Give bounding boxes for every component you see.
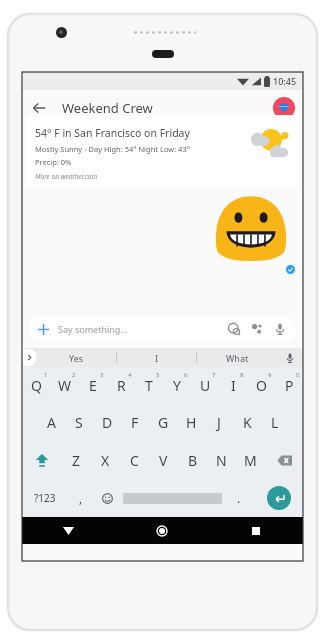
staticText: , [79,490,83,506]
button[interactable]: O [247,367,275,404]
staticText: J [217,413,221,432]
button[interactable]: Shift [22,441,61,479]
staticText: Z [72,451,81,470]
button[interactable]: Profile [273,97,295,119]
staticText: 6 [184,371,188,379]
button[interactable]: Assistant [248,320,266,338]
button[interactable]: Expand suggestions [23,349,36,366]
staticText: O [256,376,267,395]
button[interactable]: V [149,441,178,479]
button[interactable]: Voice input [271,320,289,338]
button[interactable]: U [191,367,219,404]
other: Add [38,324,49,335]
staticText: What [226,352,249,364]
button[interactable]: Backspace [265,441,303,479]
staticText: W [58,376,72,395]
staticText: Mostly Sunny - Day High: 54° Night Low: … [35,144,190,154]
staticText: 5 [156,371,160,379]
button[interactable]: W [51,367,79,404]
staticText: I [231,376,236,395]
button[interactable]: J [205,404,233,441]
button[interactable]: L [261,404,289,441]
staticText: 9 [268,371,272,379]
button[interactable]: , [67,479,94,517]
staticText: V [159,451,168,470]
button[interactable]: S [65,404,93,441]
staticText: 54° F in San Francisco on Friday [35,126,190,140]
button[interactable]: Stickers [225,320,243,338]
button[interactable]: E [79,367,107,404]
staticText: Q [31,376,42,395]
staticText: 4 [128,371,132,379]
staticText: H [186,413,197,432]
button[interactable]: ?123 [22,479,67,517]
staticText: F [131,413,139,432]
staticText: P [285,376,294,395]
button[interactable]: Voice typing [277,348,303,367]
button[interactable]: Back [22,517,115,544]
button[interactable]: A [37,404,65,441]
staticText: 10:45 [273,75,297,87]
button[interactable]: Recents [209,517,303,544]
button[interactable]: T [135,367,163,404]
button[interactable]: Z [61,441,91,479]
staticText: 1 [44,371,48,379]
staticText: B [188,451,198,470]
staticText: T [145,376,153,395]
staticText: 0 [296,371,300,379]
staticText: Y [173,376,181,395]
staticText: . [237,490,241,506]
button[interactable]: R [107,367,135,404]
staticText: U [200,376,211,395]
staticText: S [75,413,83,432]
staticText: More on weather.com [35,172,98,181]
staticText: I [155,352,159,364]
button[interactable]: Emoji [94,479,121,517]
staticText: 3 [100,371,104,379]
staticText: X [101,451,110,470]
button[interactable]: 54° F in San Francisco on Friday [26,115,299,187]
staticText: G [158,413,169,432]
staticText: Precip: 0% [35,157,72,167]
button[interactable]: C [120,441,149,479]
button[interactable]: H [177,404,205,441]
staticText: K [243,413,252,432]
button[interactable]: Y [163,367,191,404]
staticText: C [130,451,139,470]
button[interactable]: Back [22,91,56,125]
staticText: M [244,451,257,470]
button[interactable]: D [93,404,121,441]
button[interactable]: What [197,348,277,367]
button[interactable]: . [224,479,254,517]
button[interactable]: I [117,348,197,367]
button[interactable]: I [219,367,247,404]
button[interactable]: Enter [267,486,291,510]
staticText: L [271,413,279,432]
staticText: 8 [240,371,244,379]
button[interactable]: G [149,404,177,441]
button[interactable]: Home [115,517,209,544]
staticText: 7 [212,371,216,379]
staticText: Say something... [58,323,128,335]
staticText: A [47,413,56,432]
button[interactable]: P [275,367,303,404]
button[interactable]: M [236,441,265,479]
staticText: Weekend Crew [62,99,153,117]
staticText: ?123 [34,491,56,505]
staticText: N [216,451,227,470]
staticText: E [89,376,97,395]
staticText: Yes [69,352,84,364]
button[interactable]: Yes [36,348,117,367]
staticText: 2 [72,371,76,379]
button[interactable]: Q [22,367,51,404]
button[interactable]: B [178,441,207,479]
button[interactable]: K [233,404,261,441]
staticText: R [117,376,126,395]
button[interactable]: N [207,441,236,479]
staticText: D [102,413,113,432]
button[interactable]: X [91,441,120,479]
button[interactable]: Add [29,316,296,342]
button[interactable]: F [121,404,149,441]
